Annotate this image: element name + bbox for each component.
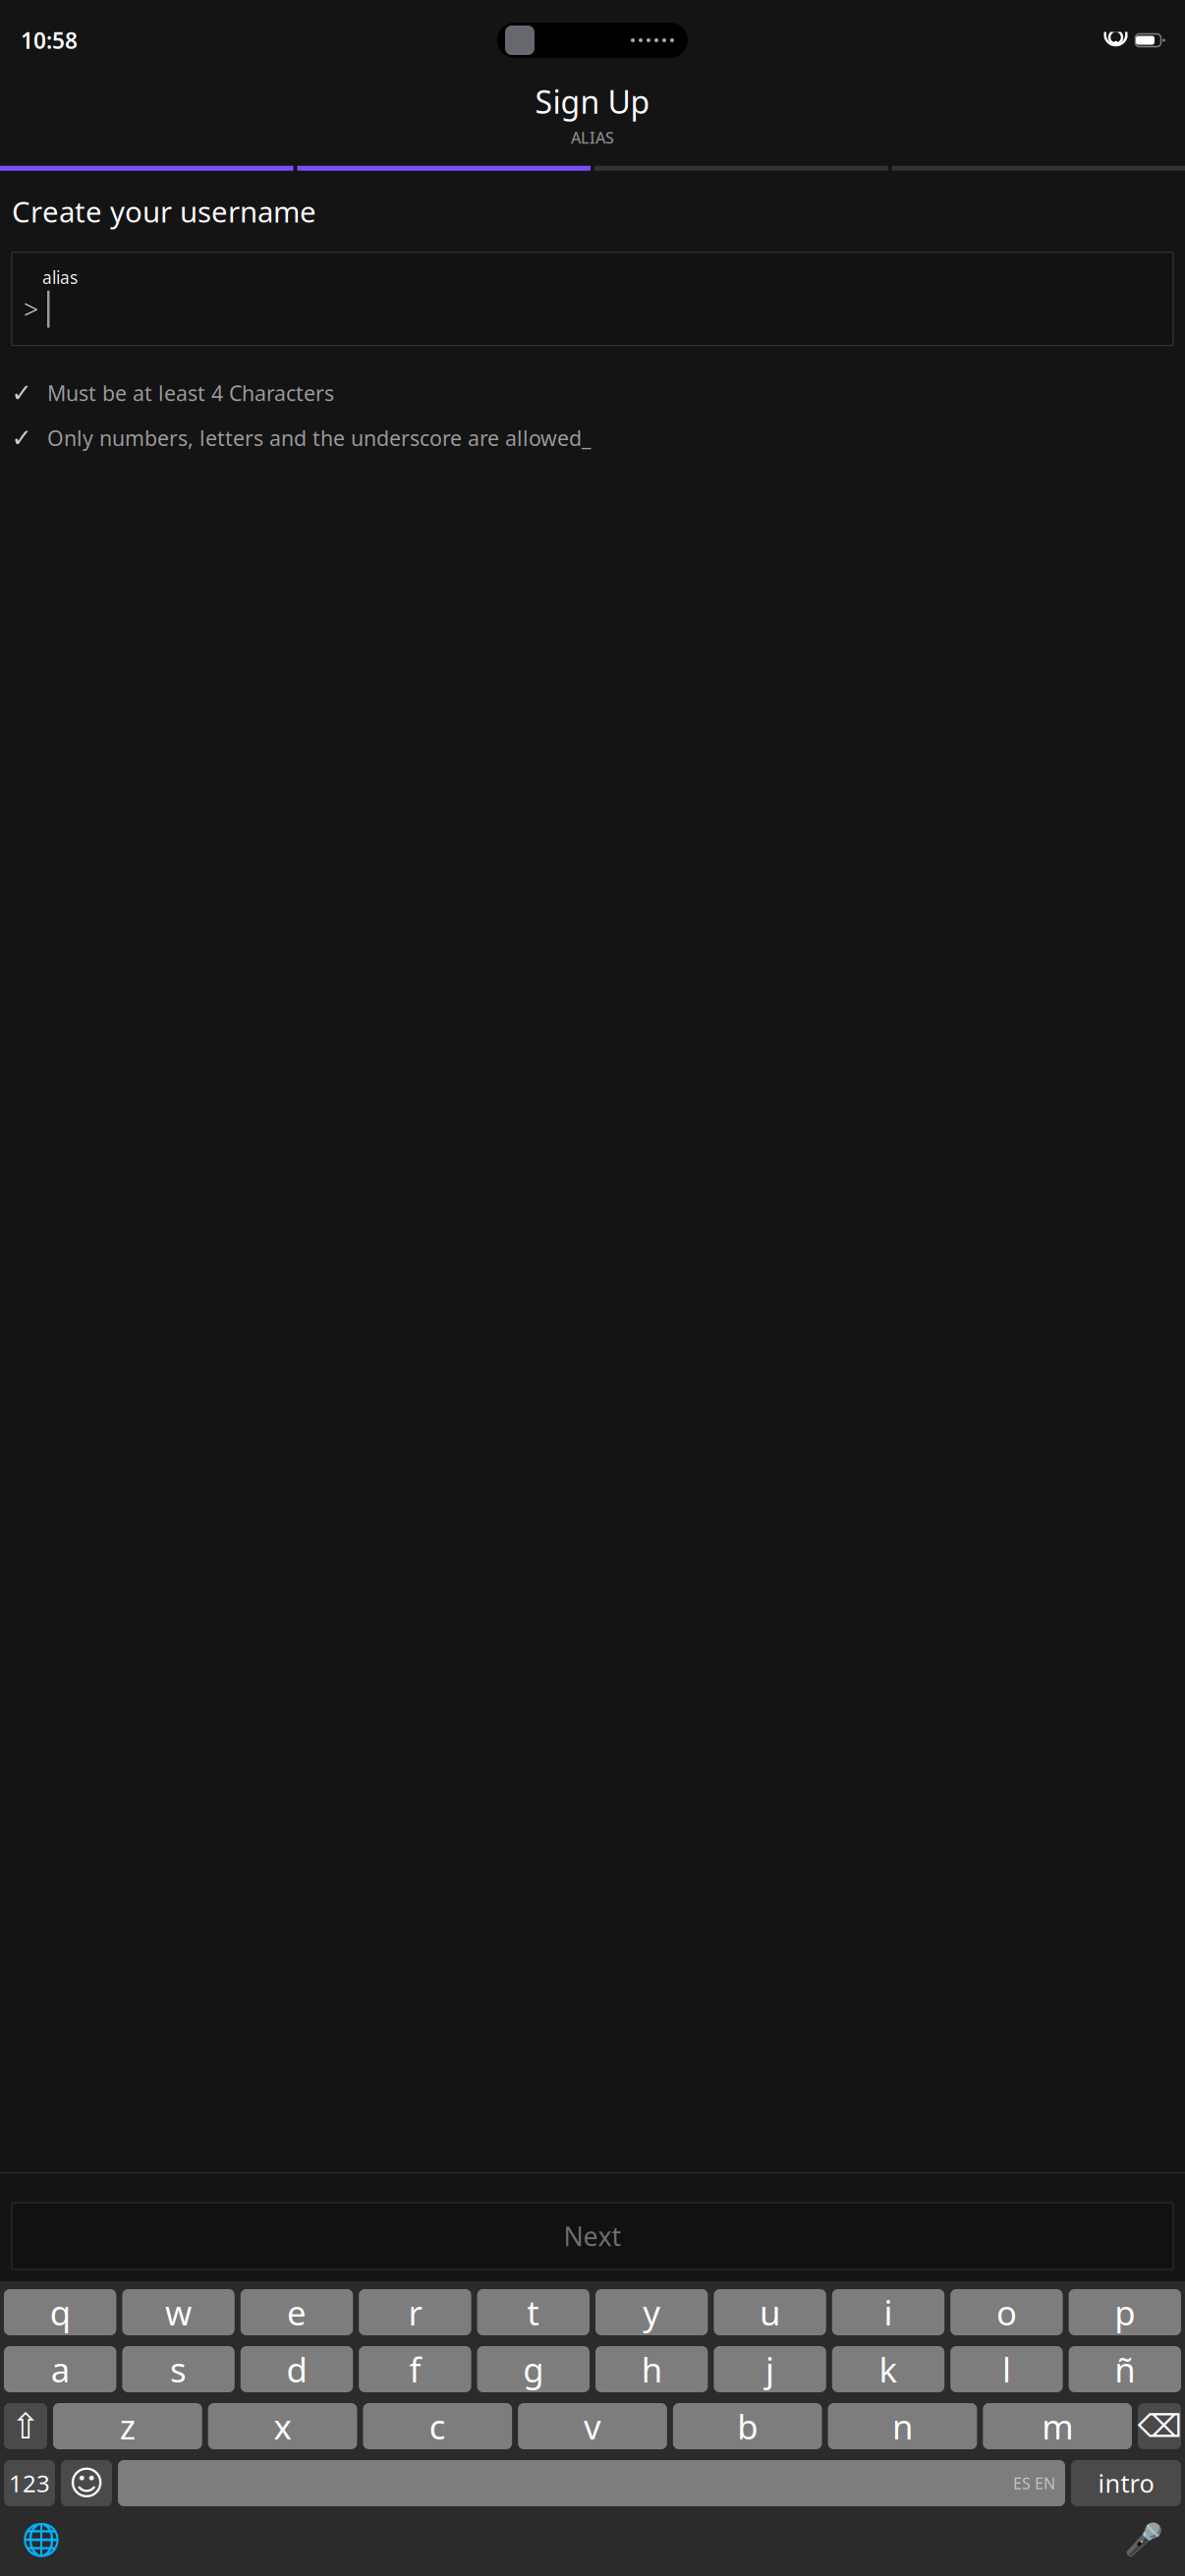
staticText: c	[429, 2404, 446, 2449]
button[interactable]: Next	[12, 2203, 1173, 2269]
staticText: n	[892, 2404, 913, 2449]
staticText: ñ	[1115, 2347, 1135, 2392]
button[interactable]: 123	[4, 2460, 55, 2506]
button[interactable]: c	[363, 2403, 512, 2449]
button[interactable]: intro	[1071, 2460, 1181, 2506]
button[interactable]: k	[832, 2346, 944, 2392]
staticText: d	[286, 2347, 307, 2392]
button[interactable]: g	[477, 2346, 590, 2392]
staticText: alias	[42, 266, 78, 289]
staticText: w	[165, 2290, 192, 2335]
button[interactable]: r	[359, 2289, 471, 2335]
staticText: m	[1042, 2404, 1073, 2449]
button[interactable]: Shift	[4, 2403, 47, 2449]
staticText: b	[737, 2404, 758, 2449]
button[interactable]: Space	[118, 2460, 1065, 2506]
staticText: ALIAS	[571, 127, 614, 148]
staticText: u	[760, 2290, 780, 2335]
button[interactable]: s	[122, 2346, 235, 2392]
staticText: ✓	[11, 379, 32, 407]
button[interactable]: ñ	[1069, 2346, 1181, 2392]
staticText: s	[170, 2347, 187, 2392]
staticText: 🎤	[1124, 2522, 1163, 2558]
button[interactable]: q	[4, 2289, 116, 2335]
staticText: 10:58	[21, 25, 78, 55]
button[interactable]: b	[673, 2403, 822, 2449]
button[interactable]: o	[950, 2289, 1063, 2335]
staticText: h	[641, 2347, 662, 2392]
staticText: z	[120, 2404, 135, 2449]
staticText: a	[51, 2347, 69, 2392]
button[interactable]: Dictation	[1120, 2516, 1167, 2563]
staticText: q	[50, 2290, 70, 2335]
staticText: ES EN	[1013, 2473, 1055, 2494]
staticText: r	[408, 2290, 422, 2335]
button[interactable]: l	[950, 2346, 1063, 2392]
staticText: g	[523, 2347, 544, 2392]
button[interactable]: x	[208, 2403, 357, 2449]
staticText: Create your username	[12, 192, 316, 231]
staticText: 123	[9, 2468, 50, 2499]
staticText: t	[527, 2290, 540, 2335]
button[interactable]: w	[122, 2289, 235, 2335]
button[interactable]: u	[714, 2289, 826, 2335]
button[interactable]: m	[983, 2403, 1132, 2449]
staticText: j	[766, 2347, 774, 2392]
staticText: k	[879, 2347, 898, 2392]
staticText: x	[274, 2404, 291, 2449]
staticText: v	[584, 2404, 601, 2449]
button[interactable]: v	[518, 2403, 667, 2449]
button[interactable]: Change keyboard	[18, 2516, 65, 2563]
staticText: ⇧	[11, 2406, 40, 2446]
staticText: l	[1002, 2347, 1011, 2392]
staticText: o	[996, 2290, 1017, 2335]
button[interactable]: p	[1069, 2289, 1181, 2335]
button[interactable]: d	[241, 2346, 353, 2392]
staticText: Sign Up	[535, 81, 650, 122]
button[interactable]: a	[4, 2346, 116, 2392]
staticText: i	[884, 2290, 893, 2335]
button[interactable]: n	[828, 2403, 977, 2449]
button[interactable]: i	[832, 2289, 944, 2335]
button[interactable]: e	[241, 2289, 353, 2335]
staticText: Only numbers, letters and the underscore…	[47, 424, 591, 452]
staticText: e	[287, 2290, 307, 2335]
button[interactable]: Emoji	[61, 2460, 112, 2506]
staticText: p	[1115, 2290, 1135, 2335]
staticText: y	[643, 2290, 660, 2335]
staticText: ⌫	[1137, 2408, 1182, 2444]
staticText: Next	[564, 2219, 621, 2253]
button[interactable]: f	[359, 2346, 471, 2392]
staticText: ✓	[11, 424, 32, 452]
staticText: f	[409, 2347, 421, 2392]
staticText: 🌐	[22, 2522, 61, 2558]
button[interactable]: t	[477, 2289, 590, 2335]
staticText: >	[24, 292, 38, 327]
staticText: ☺	[69, 2464, 104, 2502]
button[interactable]: y	[595, 2289, 708, 2335]
staticText: intro	[1098, 2467, 1154, 2500]
button[interactable]: z	[53, 2403, 202, 2449]
button[interactable]: Delete	[1138, 2403, 1181, 2449]
staticText: Must be at least 4 Characters	[47, 379, 334, 407]
button[interactable]: h	[595, 2346, 708, 2392]
button[interactable]: j	[714, 2346, 826, 2392]
